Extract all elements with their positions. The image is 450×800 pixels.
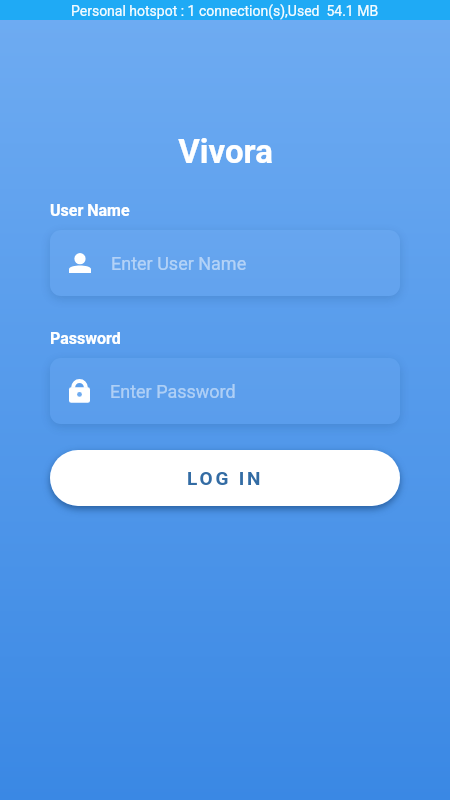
staticText: Vivora [178, 132, 273, 171]
staticText: Enter User Name [111, 253, 247, 274]
button[interactable]: User name field [50, 230, 400, 296]
staticText: Personal hotspot : 1 connection(s),Used … [71, 3, 379, 19]
staticText: LOG IN [187, 467, 264, 489]
staticText: Enter Password [110, 381, 236, 402]
button[interactable]: LOG IN [50, 450, 400, 506]
staticText: Password [50, 329, 121, 348]
button[interactable]: Password field [50, 358, 400, 424]
staticText: User Name [50, 201, 130, 220]
